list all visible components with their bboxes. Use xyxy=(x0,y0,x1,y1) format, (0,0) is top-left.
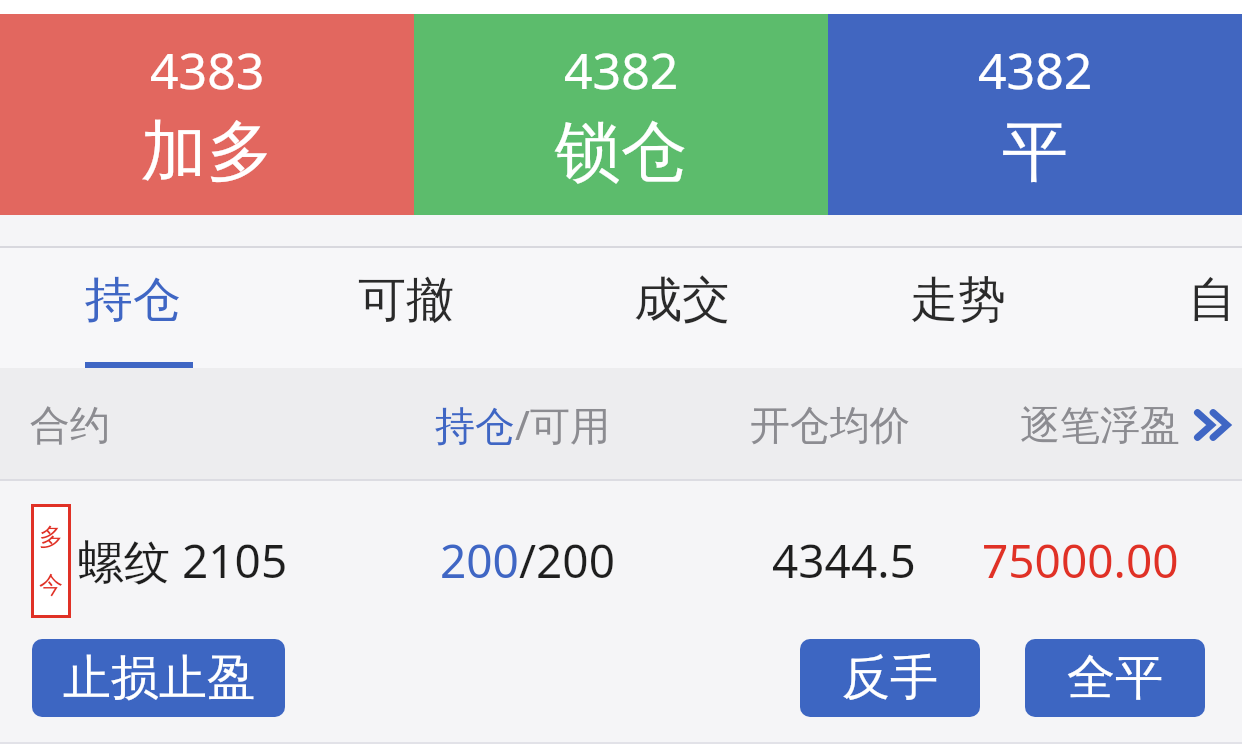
staticText: 4344.5 xyxy=(772,529,916,592)
button[interactable]: 多 xyxy=(0,481,1242,744)
staticText: 反手 xyxy=(842,648,938,708)
staticText: 锁仓 xyxy=(555,110,687,193)
button[interactable]: 持仓 xyxy=(85,248,193,368)
staticText: 可撤 xyxy=(358,270,454,330)
staticText: 全平 xyxy=(1067,648,1163,708)
button[interactable]: 自 xyxy=(1188,248,1236,368)
button[interactable]: More columns xyxy=(1192,397,1238,453)
button[interactable]: 反手 xyxy=(800,639,980,717)
button[interactable]: 4383 xyxy=(0,14,414,215)
button[interactable]: 4382 xyxy=(828,14,1242,215)
staticText: 螺纹 2105 xyxy=(78,529,288,592)
staticText: 持仓/可用 xyxy=(435,397,610,452)
staticText: 开仓均价 xyxy=(750,400,910,450)
staticText: 逐笔浮盈 xyxy=(1020,400,1180,450)
staticText: 4382 xyxy=(564,36,679,104)
button[interactable]: 成交 xyxy=(634,248,730,368)
staticText: 75000.00 xyxy=(982,529,1179,592)
staticText: 加多 xyxy=(141,110,273,193)
staticText: 成交 xyxy=(634,270,730,330)
button[interactable]: 可撤 xyxy=(358,248,454,368)
staticText: 多 xyxy=(39,522,63,552)
staticText: 今 xyxy=(39,570,63,600)
staticText: 4382 xyxy=(978,36,1093,104)
button[interactable]: 走势 xyxy=(910,248,1006,368)
staticText: 200/200 xyxy=(440,529,615,592)
staticText: 持仓 xyxy=(85,270,181,330)
button[interactable]: 止损止盈 xyxy=(32,639,285,717)
staticText: 止损止盈 xyxy=(63,648,255,708)
staticText: 合约 xyxy=(30,400,110,450)
button[interactable]: 全平 xyxy=(1025,639,1205,717)
button[interactable]: 4382 xyxy=(414,14,828,215)
staticText: 平 xyxy=(1002,110,1068,193)
staticText: 走势 xyxy=(910,270,1006,330)
staticText: 4383 xyxy=(150,36,265,104)
staticText: 自 xyxy=(1188,270,1236,330)
